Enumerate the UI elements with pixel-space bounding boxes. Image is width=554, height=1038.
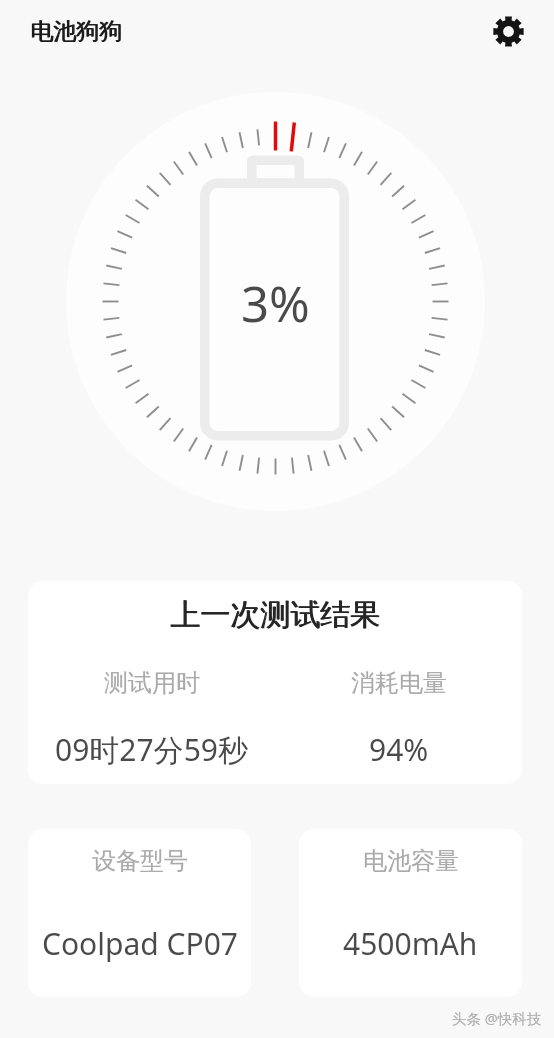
staticText: 电池容量 xyxy=(363,846,459,876)
staticText: 3% xyxy=(241,270,310,337)
button[interactable]: 上一次测试结果 xyxy=(28,581,522,784)
button[interactable]: 设备型号 xyxy=(28,829,251,997)
staticText: Coolpad CP07 xyxy=(42,923,238,964)
staticText: 4500mAh xyxy=(343,923,478,964)
staticText: 设备型号 xyxy=(92,846,188,876)
staticText: 上一次测试结果 xyxy=(28,596,522,634)
staticText: 电池狗狗 xyxy=(30,17,122,46)
staticText: 头条 @快科技 xyxy=(452,1008,542,1028)
staticText: 上一次测试结果 xyxy=(29,596,522,634)
staticText: 电池狗狗 xyxy=(31,17,123,46)
staticText: 消耗电量 xyxy=(351,668,447,698)
button[interactable]: Settings xyxy=(485,8,531,54)
button[interactable]: 电池容量 xyxy=(299,829,522,997)
staticText: 上一次测试结果 xyxy=(28,596,522,634)
staticText: 09时27分59秒 xyxy=(55,729,248,770)
staticText: 电池狗狗 xyxy=(30,17,122,46)
button[interactable]: 电池狗狗 xyxy=(14,7,138,56)
staticText: 94% xyxy=(369,729,429,770)
staticText: 测试用时 xyxy=(104,668,200,698)
